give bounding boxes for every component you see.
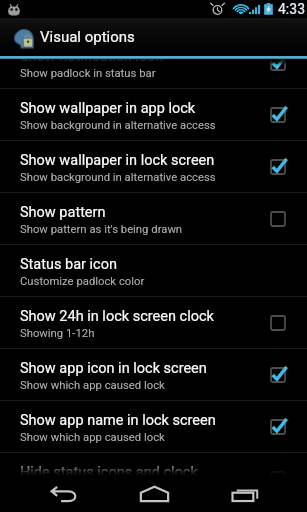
button[interactable]: Show wallpaper in app lock [0,89,307,140]
staticText: Show pattern [20,204,106,221]
button[interactable]: Show pattern [0,193,307,244]
button[interactable]: Recent apps [215,476,275,512]
button[interactable]: Hide status icons and clock [0,453,307,476]
staticText: Showing 1-12h [20,327,95,340]
staticText: Show background in alternative access [20,171,216,184]
staticText: Show wallpaper in lock screen [20,152,215,169]
staticText: Show which app caused lock [20,379,165,392]
staticText: Show app name in lock screen [20,412,216,429]
button[interactable]: Show app name in lock screen [0,401,307,452]
button[interactable]: Show notification icon [0,58,307,88]
staticText: Hide status icons and clock [20,464,198,476]
button[interactable]: Back [32,476,92,512]
button[interactable]: Status bar icon [0,245,307,296]
staticText: Show which app caused lock [20,431,165,444]
staticText: Show background in alternative access [20,119,216,132]
button[interactable]: Show wallpaper in lock screen [0,141,307,192]
staticText: Customize padlock color [20,275,145,288]
staticText: 4:33 [278,1,305,17]
button[interactable]: Show app icon in lock screen [0,349,307,400]
button[interactable]: Show 24h in lock screen clock [0,297,307,348]
staticText: Visual options [40,28,135,46]
staticText: Show notification icon [20,58,163,65]
staticText: Show wallpaper in app lock [20,100,196,117]
staticText: Show padlock in status bar [20,67,156,80]
staticText: Show 24h in lock screen clock [20,308,214,325]
staticText: Show app icon in lock screen [20,360,207,377]
button[interactable]: Home [124,476,184,512]
staticText: Show pattern as it's being drawn [20,223,183,236]
staticText: Status bar icon [20,256,117,273]
